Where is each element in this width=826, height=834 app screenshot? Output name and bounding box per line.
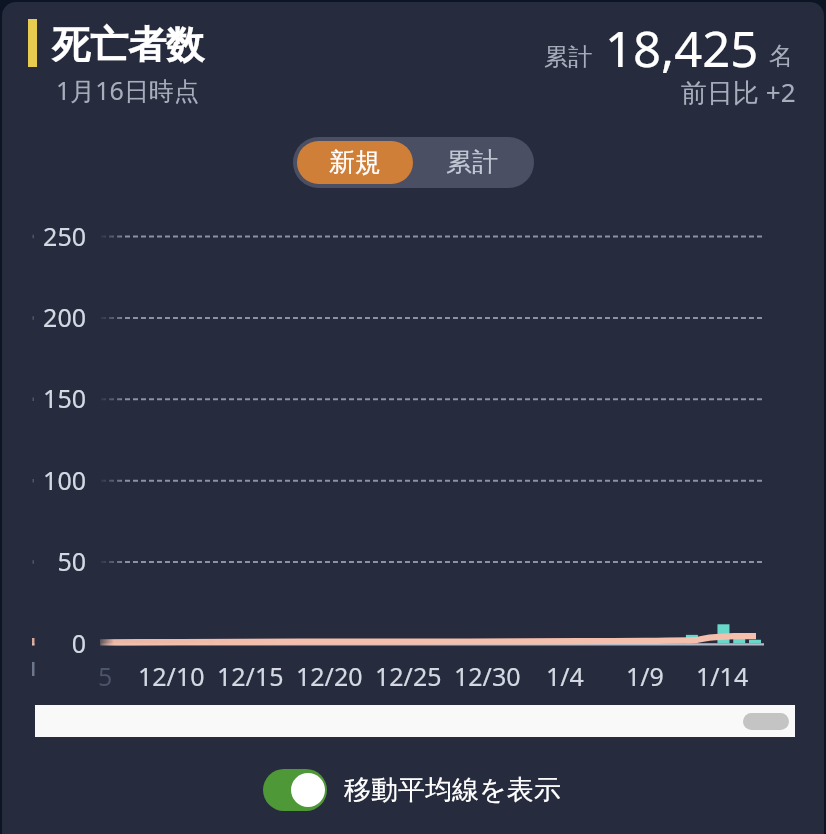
staticText: 1/14 xyxy=(696,659,749,693)
staticText: 5 xyxy=(98,659,113,693)
staticText: 1/4 xyxy=(546,659,584,693)
staticText: 12/25 xyxy=(375,659,442,693)
staticText: 名 xyxy=(769,41,793,71)
staticText: 12/10 xyxy=(138,659,205,693)
staticText: 12/20 xyxy=(296,659,363,693)
button[interactable]: 期間を選択 xyxy=(35,705,795,737)
staticText: 250 xyxy=(26,219,86,253)
staticText: 累計 xyxy=(544,42,592,72)
staticText: 死亡者数 xyxy=(52,21,204,69)
staticText: 12/30 xyxy=(454,659,521,693)
button[interactable]: 新規 xyxy=(297,141,413,184)
staticText: 前日比 +2 xyxy=(681,74,796,110)
staticText: 100 xyxy=(26,463,86,497)
staticText: 200 xyxy=(26,300,86,334)
staticText: 移動平均線を表示 xyxy=(344,773,561,807)
staticText: 150 xyxy=(26,381,86,415)
staticText: 1/9 xyxy=(626,659,664,693)
staticText: 50 xyxy=(26,544,86,578)
staticText: 1月16日時点 xyxy=(56,73,199,107)
button[interactable]: 移動平均線を表示 xyxy=(263,769,327,811)
staticText: 0 xyxy=(26,626,86,660)
staticText: 12/15 xyxy=(217,659,284,693)
button[interactable]: 累計 xyxy=(413,141,530,184)
staticText: 18,425 xyxy=(605,15,759,82)
staticText: 新規 xyxy=(329,146,381,179)
staticText: 累計 xyxy=(446,146,498,179)
